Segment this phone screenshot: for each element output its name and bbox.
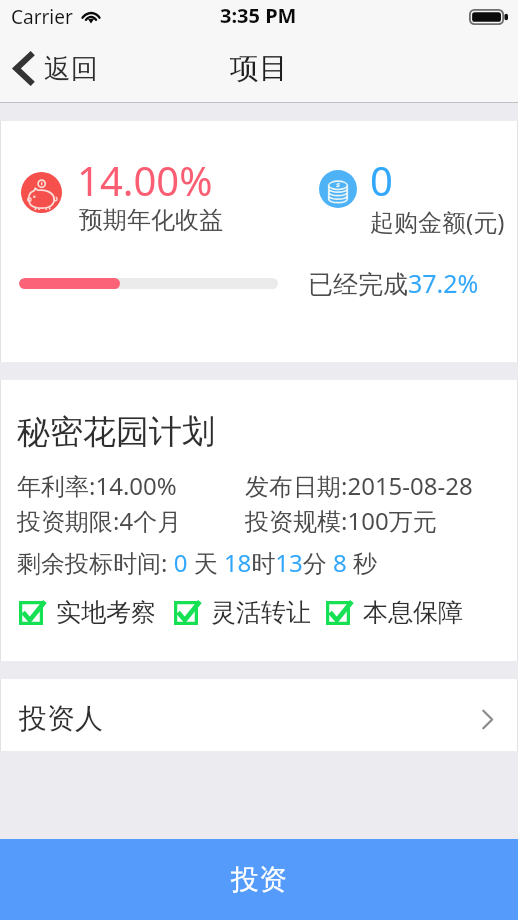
- staticText: 返回: [44, 52, 98, 86]
- staticText: 14.00%: [77, 153, 213, 207]
- staticText: 秘密花园计划: [17, 411, 215, 453]
- staticText: 项目: [230, 50, 288, 87]
- button[interactable]: Back: [0, 43, 108, 94]
- button[interactable]: 投资: [0, 839, 518, 920]
- other: Back: [13, 51, 34, 86]
- button[interactable]: 本息保障: [326, 597, 463, 628]
- staticText: 投资: [231, 862, 287, 897]
- staticText: 本息保障: [363, 597, 463, 628]
- staticText: 已经完成37.2%: [308, 266, 479, 300]
- staticText: Carrier: [11, 4, 73, 30]
- other: View investors: [482, 710, 493, 729]
- button[interactable]: 灵活转让: [174, 597, 311, 628]
- staticText: 投资期限:4个月: [17, 504, 182, 537]
- staticText: 预期年化收益: [79, 205, 223, 235]
- staticText: 剩余投标时间: 0 天 18时13分 8 秒: [17, 546, 377, 579]
- staticText: 3:35 PM: [220, 2, 297, 29]
- button[interactable]: 实地考察: [19, 597, 156, 628]
- staticText: 起购金额(元): [370, 205, 505, 238]
- staticText: 0: [370, 153, 393, 207]
- staticText: 年利率:14.00%: [17, 469, 177, 502]
- staticText: 投资规模:100万元: [245, 504, 437, 537]
- staticText: 发布日期:2015-08-28: [245, 469, 473, 502]
- staticText: 投资人: [19, 701, 103, 736]
- button[interactable]: 投资人: [0, 679, 518, 751]
- staticText: 灵活转让: [211, 597, 311, 628]
- staticText: 实地考察: [56, 597, 156, 628]
